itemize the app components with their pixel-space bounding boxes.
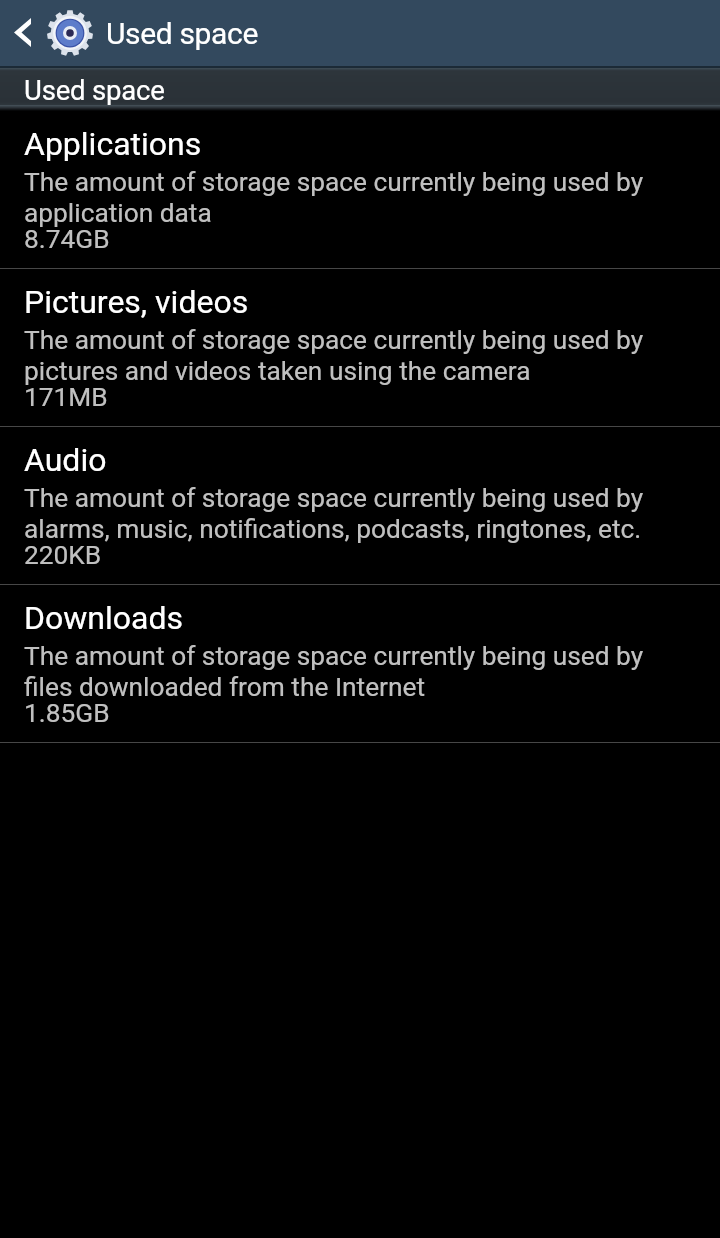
staticText: 8.74GB [24, 224, 110, 255]
staticText: Audio [24, 441, 107, 479]
staticText: Downloads [24, 599, 183, 637]
staticText: Applications [24, 125, 202, 163]
staticText: The amount of storage space currently be… [24, 167, 686, 228]
staticText: The amount of storage space currently be… [24, 325, 686, 386]
staticText: The amount of storage space currently be… [24, 641, 686, 702]
button[interactable]: Audio [0, 427, 720, 584]
staticText: The amount of storage space currently be… [24, 483, 686, 544]
staticText: Pictures, videos [24, 283, 249, 321]
button[interactable]: Downloads [0, 585, 720, 742]
staticText: 171MB [24, 382, 108, 413]
staticText: Used space [24, 74, 165, 106]
staticText: 220KB [24, 540, 102, 571]
button[interactable]: Pictures, videos [0, 269, 720, 426]
button[interactable]: Applications [0, 111, 720, 268]
button[interactable]: Back [0, 0, 93, 66]
staticText: 1.85GB [24, 698, 110, 729]
staticText: Used space [106, 16, 258, 51]
